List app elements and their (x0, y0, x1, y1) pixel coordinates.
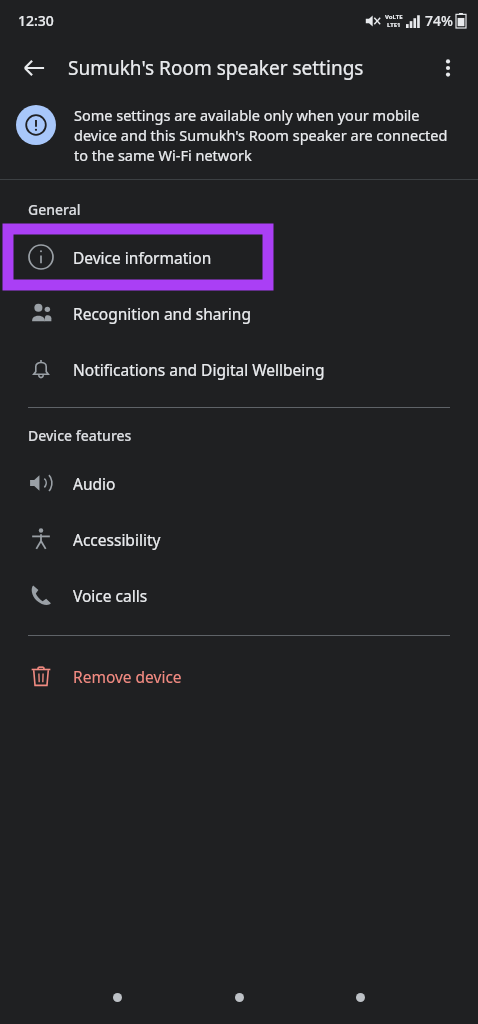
staticText: Notifications and Digital Wellbeing (73, 359, 325, 380)
button[interactable]: Recognition and sharing (0, 285, 478, 341)
staticText: VoLTE (385, 13, 403, 21)
staticText: Recognition and sharing (73, 303, 251, 324)
staticText: Remove device (73, 666, 182, 687)
staticText: Device features (28, 426, 132, 445)
button[interactable]: Voice calls (0, 567, 478, 623)
button[interactable]: Back (12, 46, 56, 90)
staticText: General (28, 200, 81, 219)
button[interactable]: Notifications and Digital Wellbeing (0, 341, 478, 397)
button[interactable]: Accessibility (0, 511, 478, 567)
staticText: Sumukh's Room speaker settings (68, 55, 364, 81)
staticText: Device information (73, 247, 212, 268)
staticText: Some settings are available only when yo… (74, 105, 456, 165)
button[interactable]: Device information (0, 229, 478, 285)
staticText: 74% (425, 11, 453, 30)
button[interactable]: Audio (0, 455, 478, 511)
button[interactable]: More options (426, 46, 470, 90)
button[interactable]: Remove device (0, 648, 478, 704)
staticText: Voice calls (73, 585, 148, 606)
staticText: 12:30 (18, 11, 54, 30)
staticText: LTE1 (387, 21, 401, 29)
staticText: Audio (73, 473, 116, 494)
staticText: Accessibility (73, 529, 161, 550)
